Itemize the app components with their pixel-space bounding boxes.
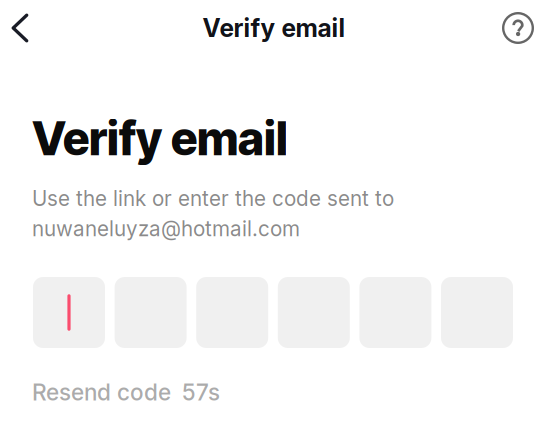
button[interactable]: Help: [496, 6, 540, 50]
button[interactable]: Back: [0, 6, 41, 50]
staticText: Verify email: [202, 13, 345, 43]
button[interactable]: Resend code: [32, 378, 220, 406]
staticText: Resend code: [32, 378, 171, 406]
button[interactable]: Code digit 1: [33, 277, 105, 348]
staticText: Use the link or enter the code sent to: [32, 186, 394, 211]
staticText: nuwaneluyza@hotmail.com: [32, 216, 300, 241]
staticText: Verify email: [32, 111, 288, 166]
staticText: 57s: [182, 378, 220, 406]
